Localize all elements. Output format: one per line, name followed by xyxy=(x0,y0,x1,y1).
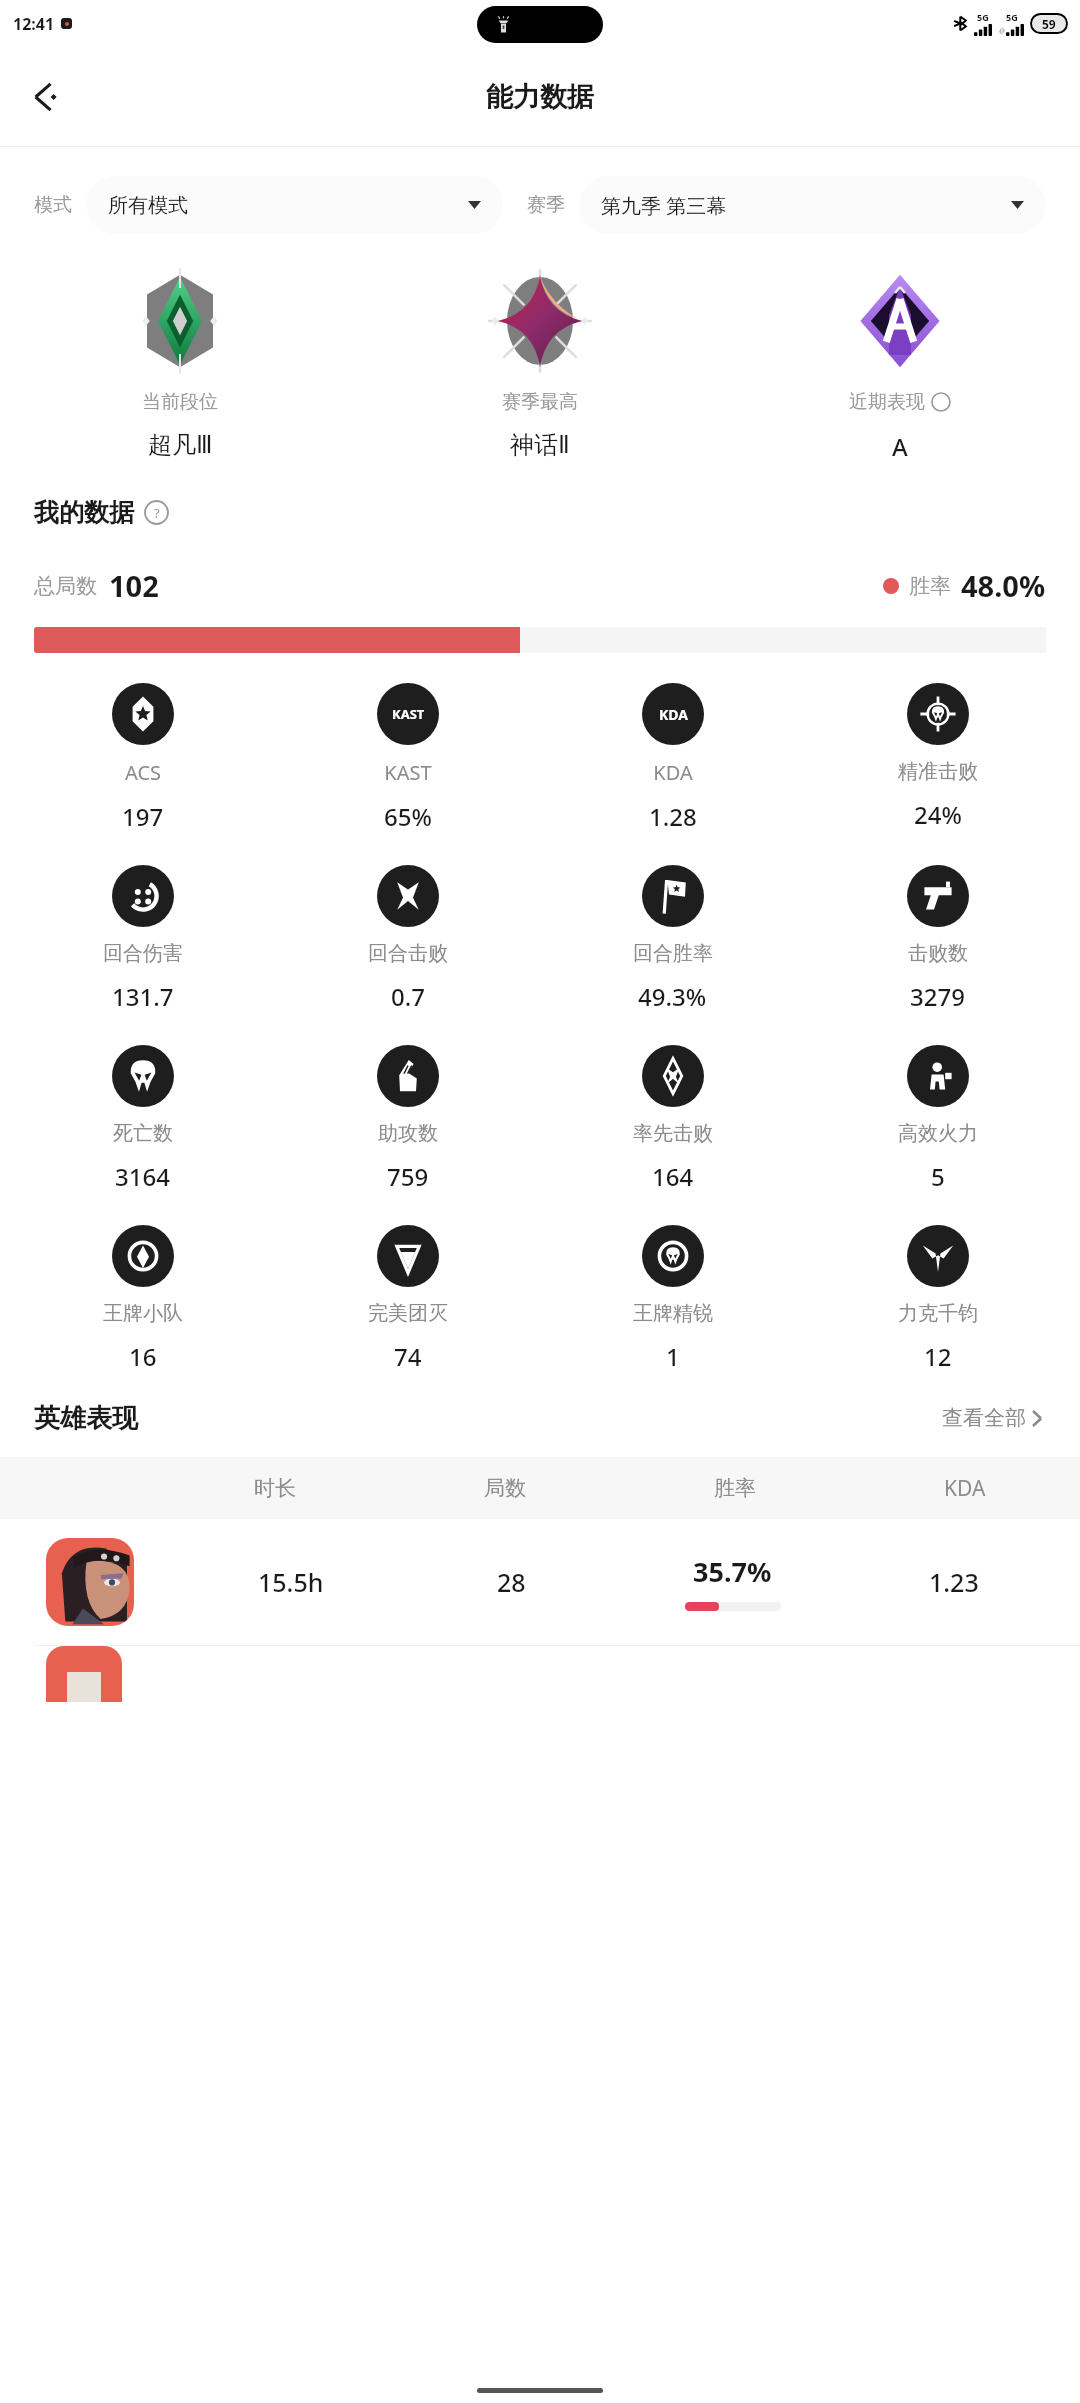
staticText: 102 xyxy=(109,566,159,605)
staticText: 我的数据 xyxy=(34,497,134,528)
staticText: 1 xyxy=(666,1340,680,1373)
staticText: 28 xyxy=(497,1565,526,1599)
button[interactable]: 赛季最高 xyxy=(360,266,720,460)
button[interactable]: 死亡数 xyxy=(10,1045,275,1193)
staticText: 1.28 xyxy=(649,800,697,833)
button[interactable]: 率先击败 xyxy=(540,1045,805,1193)
button[interactable]: 助攻数 xyxy=(275,1045,540,1193)
button[interactable]: KDA xyxy=(540,683,805,833)
staticText: 759 xyxy=(387,1160,429,1193)
button[interactable]: 力克千钧 xyxy=(805,1225,1070,1373)
staticText: 王牌小队 xyxy=(103,1301,183,1326)
staticText: 12:41 xyxy=(13,13,55,35)
staticText: 197 xyxy=(122,800,164,833)
staticText: 48.0% xyxy=(961,566,1046,605)
staticText: 时长 xyxy=(254,1475,296,1501)
staticText: A xyxy=(892,430,908,463)
staticText: 助攻数 xyxy=(378,1121,438,1146)
button[interactable]: 15.5h xyxy=(0,1519,1080,1645)
button[interactable]: 近期表现 xyxy=(720,266,1080,463)
staticText: 16 xyxy=(129,1340,157,1373)
staticText: 回合伤害 xyxy=(103,941,183,966)
staticText: 赛季最高 xyxy=(502,390,578,414)
staticText: 赛季 xyxy=(527,193,565,217)
staticText: 3279 xyxy=(910,980,965,1013)
staticText: KAST xyxy=(392,705,425,723)
button[interactable]: 当前段位 xyxy=(0,266,360,460)
staticText: 力克千钧 xyxy=(898,1301,978,1326)
staticText: 第九季 第三幕 xyxy=(601,192,727,219)
button[interactable]: 回合击败 xyxy=(275,865,540,1013)
button[interactable]: 精准击败 xyxy=(805,683,1070,831)
button[interactable]: 查看全部 xyxy=(938,1401,1046,1435)
button[interactable]: 所有模式 xyxy=(86,176,503,234)
staticText: 3164 xyxy=(115,1160,170,1193)
staticText: 能力数据 xyxy=(486,80,594,114)
button[interactable]: KAST xyxy=(275,683,540,833)
staticText: 当前段位 xyxy=(142,390,218,414)
button[interactable]: 完美团灭 xyxy=(275,1225,540,1373)
staticText: 率先击败 xyxy=(633,1121,713,1146)
staticText: 完美团灭 xyxy=(368,1301,448,1326)
staticText: 12 xyxy=(924,1340,952,1373)
staticText: ? xyxy=(154,504,160,522)
button[interactable]: Help xyxy=(144,500,169,525)
button[interactable]: 击败数 xyxy=(805,865,1070,1013)
staticText: 超凡Ⅲ xyxy=(148,430,213,460)
staticText: 胜率 xyxy=(714,1475,756,1501)
button[interactable]: Back xyxy=(18,68,76,126)
staticText: 回合胜率 xyxy=(633,941,713,966)
staticText: 精准击败 xyxy=(898,759,978,784)
button[interactable]: 王牌精锐 xyxy=(540,1225,805,1373)
staticText: 英雄表现 xyxy=(34,1402,138,1435)
staticText: 回合击败 xyxy=(368,941,448,966)
button[interactable]: ACS xyxy=(10,683,275,833)
staticText: KDA xyxy=(653,759,693,786)
staticText: 15.5h xyxy=(258,1565,324,1599)
staticText: 高效火力 xyxy=(898,1121,978,1146)
button[interactable]: 王牌小队 xyxy=(10,1225,275,1373)
staticText: 131.7 xyxy=(112,980,174,1013)
staticText: KDA xyxy=(659,705,688,724)
staticText: KDA xyxy=(944,1474,986,1503)
staticText: 35.7% xyxy=(693,1553,772,1590)
staticText: 5G xyxy=(1006,11,1018,23)
staticText: 65% xyxy=(384,800,432,833)
staticText: 74 xyxy=(394,1340,422,1373)
staticText: 59 xyxy=(1042,16,1056,32)
staticText: 0.7 xyxy=(391,980,425,1013)
staticText: 49.3% xyxy=(638,980,707,1013)
staticText: 模式 xyxy=(34,193,72,217)
button[interactable]: 回合胜率 xyxy=(540,865,805,1013)
staticText: 1.23 xyxy=(929,1565,979,1599)
staticText: 胜率 xyxy=(909,573,951,599)
staticText: 死亡数 xyxy=(113,1121,173,1146)
button[interactable] xyxy=(0,1646,1080,1706)
staticText: 近期表现 xyxy=(849,390,925,414)
button[interactable]: 第九季 第三幕 xyxy=(579,176,1046,234)
staticText: 击败数 xyxy=(908,941,968,966)
button[interactable]: 回合伤害 xyxy=(10,865,275,1013)
staticText: KAST xyxy=(384,759,432,786)
staticText: 总局数 xyxy=(34,573,97,599)
staticText: 24% xyxy=(914,798,962,831)
staticText: 所有模式 xyxy=(108,193,188,218)
staticText: 5G xyxy=(977,11,989,23)
staticText: 局数 xyxy=(484,1475,526,1501)
button[interactable]: 高效火力 xyxy=(805,1045,1070,1193)
staticText: 查看全部 xyxy=(942,1405,1026,1431)
staticText: 5 xyxy=(931,1160,945,1193)
staticText: ACS xyxy=(125,759,161,786)
staticText: 王牌精锐 xyxy=(633,1301,713,1326)
staticText: 164 xyxy=(652,1160,694,1193)
staticText: 神话Ⅱ xyxy=(510,430,570,460)
